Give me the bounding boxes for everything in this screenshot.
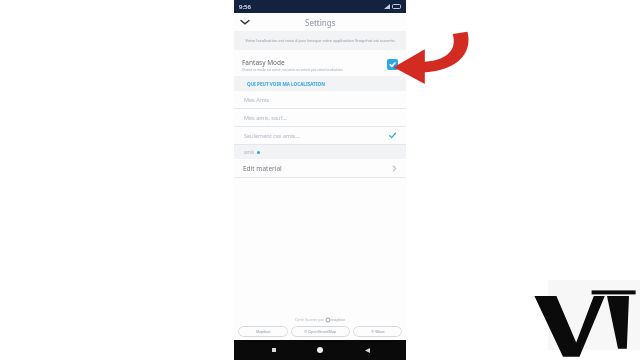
staticText: Mapbox xyxy=(256,329,271,334)
staticText: amis xyxy=(244,149,255,155)
button[interactable]: Mes amis, sauf... xyxy=(234,109,406,126)
button[interactable]: Edit material xyxy=(234,159,406,177)
button[interactable]: Fantasy Mode enabled xyxy=(387,59,398,70)
staticText: © OpenStreetMap xyxy=(304,329,337,334)
button[interactable]: amis xyxy=(234,145,406,159)
staticText: 9:56 xyxy=(239,3,251,11)
button[interactable]: QUI PEUT VOIR MA LOCALISATION xyxy=(234,76,406,91)
button[interactable]: © OpenStreetMap xyxy=(291,326,350,337)
button[interactable]: Collapse xyxy=(239,16,251,28)
button[interactable]: Mapbox xyxy=(238,326,288,337)
button[interactable]: Back xyxy=(360,343,374,357)
staticText: Mes Amis xyxy=(244,96,396,103)
staticText: Settings xyxy=(305,17,336,28)
button[interactable]: © Waze xyxy=(353,326,402,337)
staticText: Votre localisation est mise à jour lorsq… xyxy=(245,38,396,43)
staticText: Seulement ces amis... xyxy=(244,132,389,139)
staticText: Mes amis, sauf... xyxy=(244,114,396,121)
staticText: © Waze xyxy=(371,329,385,334)
staticText: Fantasy Mode xyxy=(242,58,285,67)
staticText: QUI PEUT VOIR MA LOCALISATION xyxy=(247,81,325,87)
staticText: Carte fournie par xyxy=(295,317,324,322)
button[interactable]: Mes Amis xyxy=(234,91,406,108)
staticText: mapbox xyxy=(331,317,345,322)
button[interactable]: Fantasy Mode xyxy=(234,53,406,76)
button[interactable]: Home xyxy=(313,343,327,357)
staticText: Quand ce mode est activé, vos amis ne vo… xyxy=(242,68,344,72)
button[interactable]: Seulement ces amis... xyxy=(234,127,406,144)
button[interactable]: Recent apps xyxy=(267,343,281,357)
staticText: Edit material xyxy=(243,164,392,173)
